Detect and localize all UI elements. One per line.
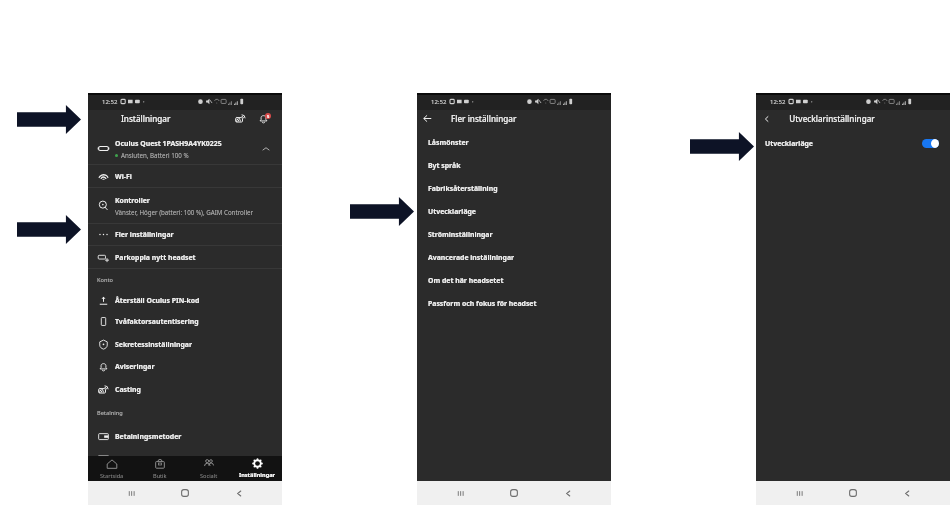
staticText: 12:52 <box>770 98 786 106</box>
button[interactable]: Byt språk <box>417 154 611 177</box>
button[interactable]: Notifications <box>256 111 271 126</box>
button[interactable]: Återställ Oculus PIN-kod <box>88 291 282 310</box>
staticText: 5 <box>267 114 270 119</box>
button[interactable]: Om det här headsetet <box>417 269 611 292</box>
staticText: Inställningar <box>239 471 276 479</box>
staticText: Parkoppla nytt headset <box>115 253 196 262</box>
button[interactable]: Ströminställningar <box>417 223 611 246</box>
staticText: Aviseringar <box>115 362 155 371</box>
button[interactable]: Back <box>896 482 918 504</box>
staticText: Fler inställningar <box>115 230 174 239</box>
staticText: Utvecklarinställningar <box>789 113 875 124</box>
staticText: Passform och fokus för headset <box>428 299 537 308</box>
staticText: Fabriksåterställning <box>428 184 498 193</box>
staticText: 12:52 <box>102 98 118 106</box>
staticText: Wi-Fi <box>115 172 132 181</box>
staticText: Inställningar <box>121 113 171 124</box>
staticText: Om det här headsetet <box>428 276 504 285</box>
button[interactable]: Passform och fokus för headset <box>417 292 611 315</box>
staticText: Låsmönster <box>428 138 469 147</box>
button[interactable]: Inställningar <box>233 456 282 481</box>
staticText: Ansluten, Batteri 100 % <box>121 151 189 159</box>
staticText: Kontroller <box>115 196 150 205</box>
button[interactable]: Home <box>503 482 525 504</box>
staticText: Butik <box>153 472 167 480</box>
button[interactable]: Oculus Quest 1PASH9A4YK0225 <box>88 133 282 164</box>
staticText: Ströminställningar <box>428 230 493 239</box>
staticText: Tvåfaktorsautentisering <box>115 317 199 326</box>
staticText: Startsida <box>100 472 124 480</box>
staticText: Betalningsmetoder <box>115 432 182 441</box>
button[interactable]: Socialt <box>184 456 233 481</box>
button[interactable]: Home <box>842 482 864 504</box>
button[interactable]: Recents <box>120 482 142 504</box>
staticText: Casting <box>115 385 141 394</box>
button[interactable]: Kontroller <box>88 188 282 223</box>
staticText: Konto <box>97 276 114 284</box>
staticText: Utvecklarläge <box>765 139 813 148</box>
button[interactable]: Back <box>759 111 774 126</box>
button[interactable]: Butik <box>136 456 184 481</box>
button[interactable]: Collapse <box>259 142 272 155</box>
button[interactable]: Recents <box>449 482 471 504</box>
button[interactable]: Tvåfaktorsautentisering <box>88 310 282 333</box>
staticText: Vänster, Höger (batteri: 100 %), GAIM Co… <box>115 208 254 216</box>
staticText: Sekretessinställningar <box>115 340 193 349</box>
button[interactable]: Betalningsmetoder <box>88 425 282 447</box>
button[interactable]: Recents <box>788 482 810 504</box>
button[interactable]: Cast <box>233 111 248 126</box>
staticText: 12:52 <box>431 98 447 106</box>
staticText: Socialt <box>200 472 218 480</box>
button[interactable]: Utvecklarläge <box>417 200 611 223</box>
button[interactable]: Parkoppla nytt headset <box>88 246 282 268</box>
button[interactable]: Back <box>557 482 579 504</box>
staticText: Fler inställningar <box>451 113 517 124</box>
button[interactable]: Utvecklarläge <box>756 131 950 155</box>
button[interactable]: Back <box>420 111 435 126</box>
staticText: Byt språk <box>428 161 461 170</box>
button[interactable]: Back <box>228 482 250 504</box>
staticText: Återställ Oculus PIN-kod <box>115 296 200 305</box>
staticText: Avancerade inställningar <box>428 253 515 262</box>
button[interactable]: Låsmönster <box>417 131 611 154</box>
button[interactable]: Startsida <box>88 456 136 481</box>
staticText: Betalning <box>97 409 123 417</box>
button[interactable]: Aviseringar <box>88 355 282 378</box>
button[interactable]: Home <box>174 482 196 504</box>
button[interactable]: Casting <box>88 378 282 401</box>
staticText: Oculus Quest 1PASH9A4YK0225 <box>115 139 222 148</box>
button[interactable]: Fabriksåterställning <box>417 177 611 200</box>
button[interactable]: Wi-Fi <box>88 165 282 187</box>
button[interactable]: Fler inställningar <box>88 224 282 245</box>
staticText: Utvecklarläge <box>428 207 476 216</box>
button[interactable]: Avancerade inställningar <box>417 246 611 269</box>
button[interactable]: Sekretessinställningar <box>88 333 282 355</box>
